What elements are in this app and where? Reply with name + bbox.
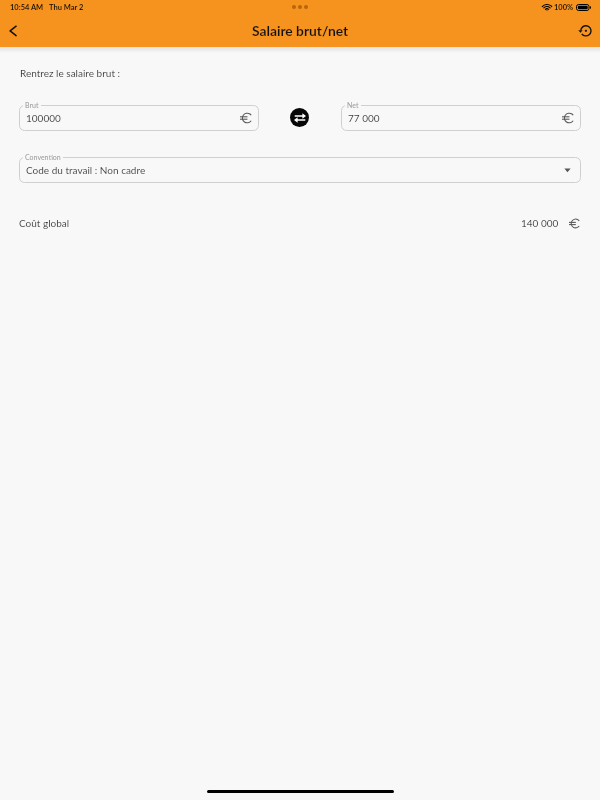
staticText: Brut [25,101,39,109]
staticText: 100% [554,3,574,12]
button[interactable]: Swap brut and net [290,108,309,127]
staticText: Net [347,101,359,109]
button[interactable]: Back [2,20,26,44]
button[interactable]: History [572,20,596,44]
staticText: Convention [25,153,61,161]
staticText: 77 000 [348,112,380,124]
staticText: 10:54 AM [10,3,44,12]
staticText: Salaire brut/net [252,22,349,39]
staticText: 100000 [26,112,61,124]
staticText: Thu Mar 2 [49,3,84,12]
staticText: Coût global [19,217,70,229]
staticText: 140 000 [521,217,559,229]
staticText: Code du travail : Non cadre [26,164,146,176]
staticText: Rentrez le salaire brut : [20,67,121,79]
